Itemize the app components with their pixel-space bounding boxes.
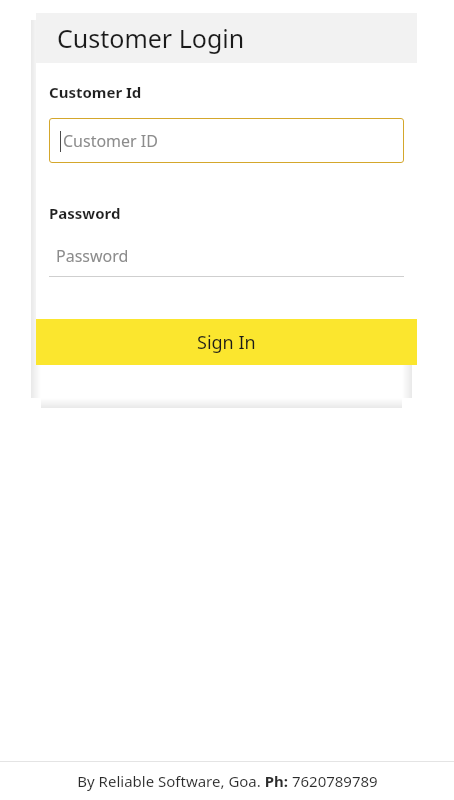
button[interactable]: Customer ID <box>49 118 404 163</box>
staticText: Customer Id <box>49 82 142 102</box>
button[interactable]: Password <box>49 245 404 277</box>
staticText: Customer Login <box>57 21 245 55</box>
staticText: Customer ID <box>63 130 158 152</box>
staticText: By Reliable Software, Goa. Ph: 762078978… <box>77 771 378 791</box>
button[interactable]: Sign In <box>36 319 417 365</box>
staticText: Password <box>49 203 121 223</box>
staticText: Password <box>56 245 129 267</box>
staticText: Sign In <box>197 330 256 355</box>
